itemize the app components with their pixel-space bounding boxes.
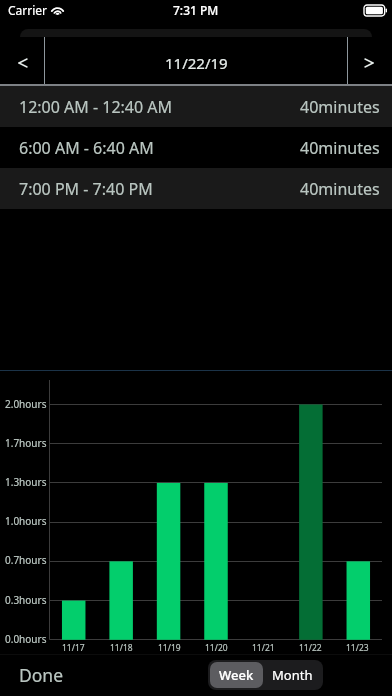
staticText: 7:00 PM - 7:40 PM (19, 178, 153, 200)
staticText: 11/21 (252, 642, 275, 654)
button[interactable]: 6:00 AM - 6:40 AM (0, 127, 392, 168)
staticText: 11/19 (158, 642, 181, 654)
staticText: Week (219, 666, 254, 684)
staticText: 1.0hours (5, 514, 47, 528)
staticText: 11/20 (205, 642, 228, 654)
staticText: Done (19, 663, 64, 687)
staticText: 11/17 (62, 642, 85, 654)
staticText: 6:00 AM - 6:40 AM (19, 137, 154, 159)
button[interactable]: Month (263, 662, 321, 688)
button[interactable]: Done (0, 654, 83, 696)
staticText: 7:31 PM (173, 2, 219, 18)
staticText: 1.3hours (5, 475, 47, 489)
staticText: 0.3hours (5, 593, 47, 607)
staticText: 11/23 (346, 642, 369, 654)
staticText: Month (272, 666, 313, 684)
button[interactable]: Previous day (0, 37, 44, 84)
staticText: 40minutes (300, 178, 380, 200)
staticText: 40minutes (300, 137, 380, 159)
staticText: 40minutes (300, 96, 380, 118)
staticText: 12:00 AM - 12:40 AM (19, 96, 173, 118)
staticText: 0.7hours (5, 553, 47, 567)
staticText: 0.0hours (5, 632, 47, 646)
staticText: 11/22 (299, 642, 322, 654)
button[interactable]: 7:00 PM - 7:40 PM (0, 168, 392, 209)
button[interactable]: Week (210, 662, 263, 688)
button[interactable]: Next day (348, 37, 392, 84)
button[interactable]: 12:00 AM - 12:40 AM (0, 86, 392, 127)
staticText: 11/18 (110, 642, 133, 654)
staticText: 11/22/19 (165, 53, 228, 73)
staticText: 2.0hours (5, 397, 47, 411)
staticText: 1.7hours (5, 436, 47, 450)
staticText: Carrier (8, 2, 48, 18)
